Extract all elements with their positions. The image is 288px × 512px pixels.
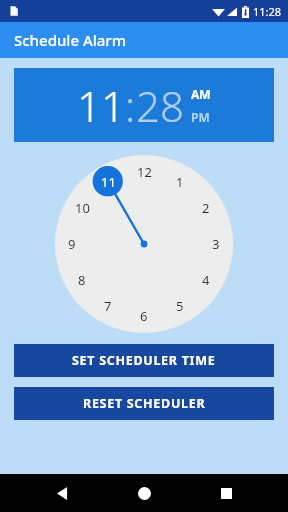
staticText: 28 xyxy=(136,77,184,134)
button[interactable]: Home xyxy=(124,474,164,512)
staticText: 3 xyxy=(212,235,220,253)
staticText: 12 xyxy=(137,163,152,181)
button[interactable]: Clock face hour picker xyxy=(55,155,233,333)
staticText: 2 xyxy=(202,199,210,217)
button[interactable]: PM xyxy=(191,109,210,125)
button[interactable]: 11 xyxy=(14,68,274,142)
staticText: 5 xyxy=(176,297,184,315)
button[interactable]: SET SCHEDULER TIME xyxy=(14,344,274,377)
button[interactable]: Back xyxy=(42,474,82,512)
staticText: 11 xyxy=(77,77,125,134)
staticText: 10 xyxy=(75,199,90,217)
staticText: 9 xyxy=(68,235,76,253)
staticText: 4 xyxy=(202,271,210,289)
staticText: 11:28 xyxy=(253,4,282,19)
staticText: 6 xyxy=(140,307,148,325)
staticText: 7 xyxy=(104,297,112,315)
staticText: 11 xyxy=(101,173,116,191)
button[interactable]: Recent apps xyxy=(206,474,246,512)
staticText: 8 xyxy=(78,271,86,289)
staticText: : xyxy=(125,77,136,134)
staticText: Schedule Alarm xyxy=(14,30,126,50)
button[interactable]: RESET SCHEDULER xyxy=(14,387,274,420)
staticText: SET SCHEDULER TIME xyxy=(72,352,216,369)
staticText: RESET SCHEDULER xyxy=(83,395,206,412)
button[interactable]: AM xyxy=(191,86,211,102)
staticText: 1 xyxy=(176,173,184,191)
